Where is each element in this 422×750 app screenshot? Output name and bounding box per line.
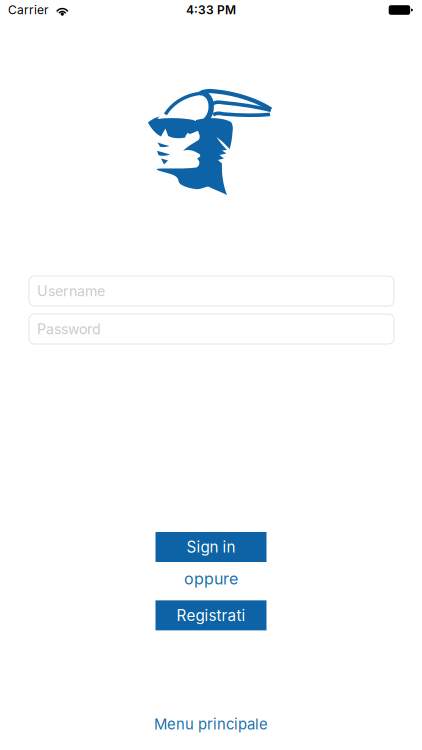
staticText: 4:33 PM: [186, 3, 236, 17]
staticText: Registrati: [176, 606, 245, 625]
staticText: Menu principale: [154, 715, 268, 733]
staticText: Sign in: [186, 538, 235, 556]
staticText: oppure: [184, 569, 238, 588]
staticText: Password: [37, 320, 101, 337]
button[interactable]: Registrati: [155, 600, 266, 630]
staticText: Carrier: [8, 3, 49, 17]
button[interactable]: Sign in: [155, 532, 266, 562]
button[interactable]: Menu principale: [154, 715, 268, 733]
staticText: Username: [37, 282, 105, 299]
